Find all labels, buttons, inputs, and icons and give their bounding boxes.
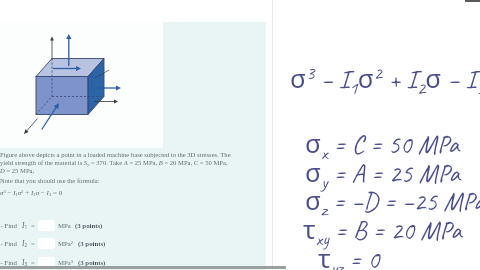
staticText: = xyxy=(31,222,35,230)
staticText: τyz = 0 xyxy=(318,240,380,270)
staticText: I3 xyxy=(22,258,28,268)
staticText: = xyxy=(31,240,35,248)
staticText: yield strength of the material is Sy = 3… xyxy=(0,159,228,167)
button[interactable]: 2- Find xyxy=(0,237,106,250)
staticText: MPa2 xyxy=(58,240,74,248)
staticText: 2- Find xyxy=(0,240,17,248)
staticText: 3- Find xyxy=(0,259,17,267)
staticText: (3 points) xyxy=(78,240,106,248)
staticText: Figure above depicts a point in a loaded… xyxy=(0,151,231,158)
staticText: σy = A = 25 MPa xyxy=(305,154,460,193)
staticText: (3 points) xyxy=(75,222,103,230)
staticText: σx = C = 50 MPa xyxy=(305,125,460,164)
staticText: = xyxy=(31,259,35,267)
staticText: (3 points) xyxy=(78,259,106,267)
staticText: I1 xyxy=(22,221,28,231)
staticText: MPa3 xyxy=(58,259,74,267)
staticText: σ3 – I1σ2 + I2σ – I3 = 0 xyxy=(290,60,480,99)
button[interactable] xyxy=(38,257,55,268)
staticText: D = 25 MPa, xyxy=(0,167,35,174)
staticText: σ3 − I1σ2 + I2σ − I3 = 0 xyxy=(0,189,63,197)
button[interactable]: 3- Find xyxy=(0,256,106,269)
staticText: σz = –D = –25 MPa xyxy=(305,182,480,221)
staticText: Note that you should use the formula: xyxy=(0,177,100,184)
staticText: 1- Find xyxy=(0,222,17,230)
button[interactable]: 1- Find xyxy=(0,219,103,232)
staticText: I2 xyxy=(22,239,28,249)
staticText: MPa xyxy=(58,222,71,230)
staticText: τxy = B = 20 MPa xyxy=(303,211,462,250)
